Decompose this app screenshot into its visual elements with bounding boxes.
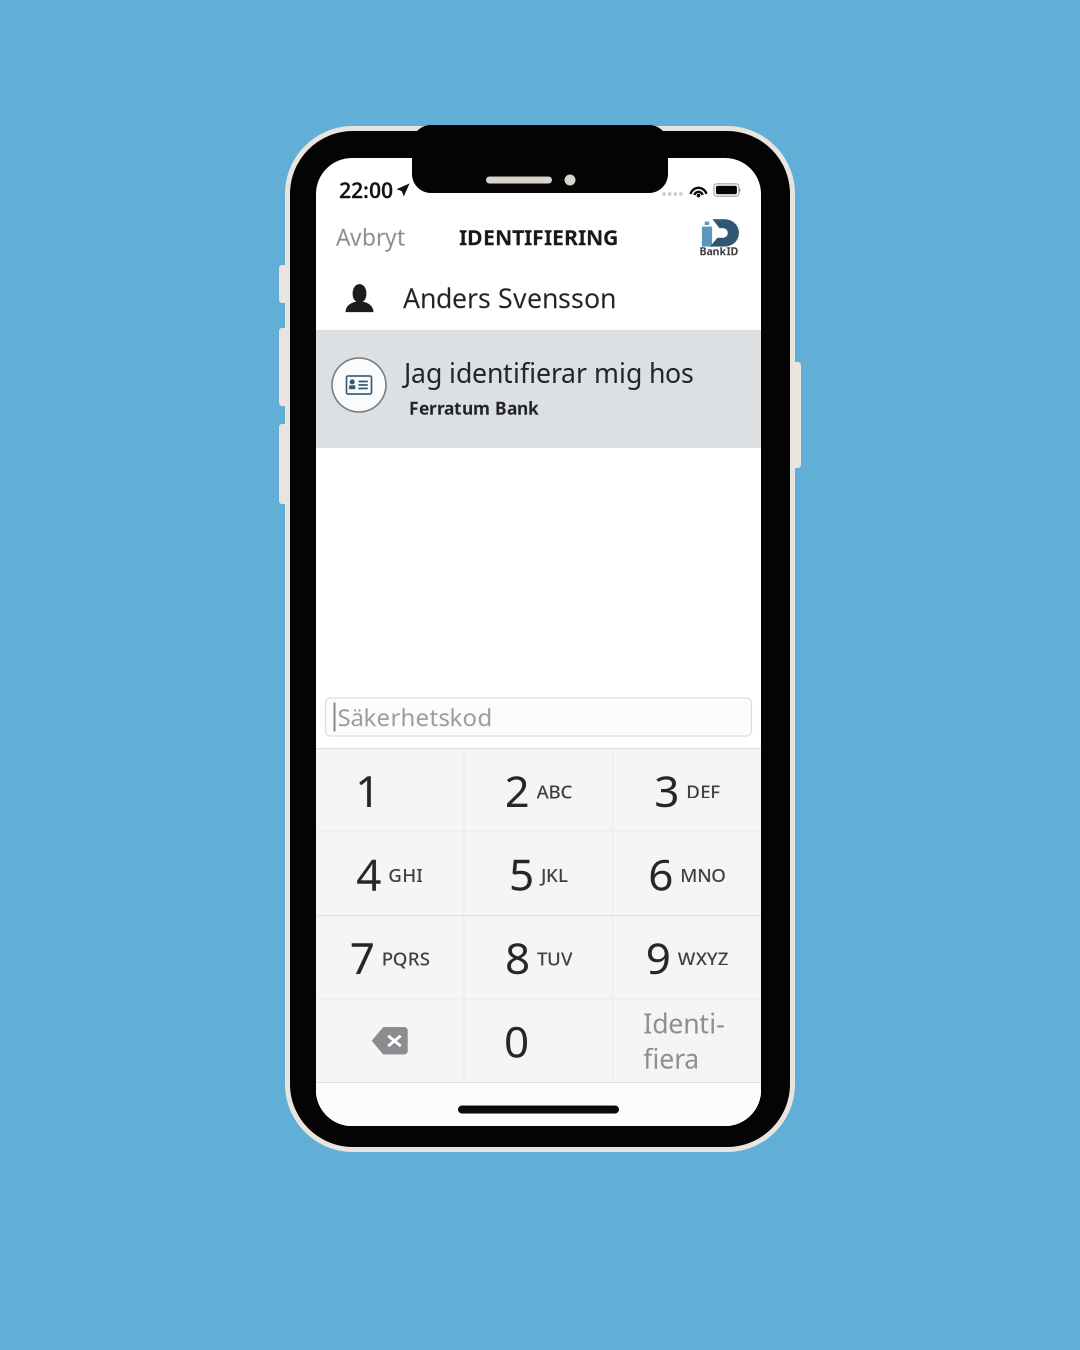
button[interactable]: 8 — [465, 916, 612, 998]
button[interactable]: Identi- fiera — [613, 999, 761, 1082]
staticText: Ferratum Bank — [409, 396, 539, 419]
staticText: WXYZ — [678, 946, 729, 971]
staticText: 2 — [504, 761, 529, 819]
staticText: TUV — [537, 946, 572, 971]
staticText: MNO — [680, 862, 726, 887]
button[interactable]: 3 — [613, 749, 761, 831]
staticText: 9 — [646, 928, 671, 986]
staticText: Anders Svensson — [403, 280, 616, 316]
button[interactable]: 7 — [316, 916, 464, 998]
staticText: 22:00 — [339, 176, 393, 204]
staticText: Jag identifierar mig hos — [404, 355, 694, 390]
staticText: DEF — [686, 779, 720, 804]
button[interactable]: 2 — [465, 749, 612, 831]
button[interactable]: 1 — [316, 749, 464, 831]
staticText: Identi- fiera — [643, 1005, 725, 1076]
staticText: Säkerhetskod — [337, 701, 492, 733]
button[interactable]: Radera — [316, 999, 464, 1082]
staticText: IDENTIFIERING — [459, 223, 618, 251]
staticText: JKL — [541, 862, 568, 887]
staticText: 0 — [504, 1011, 529, 1070]
button[interactable]: Avbryt — [316, 208, 432, 266]
staticText: 6 — [648, 844, 673, 903]
button[interactable]: 4 — [316, 832, 464, 915]
staticText: PQRS — [382, 946, 430, 971]
staticText: 3 — [654, 761, 679, 819]
staticText: BankID — [699, 244, 738, 258]
staticText: GHI — [388, 862, 423, 887]
staticText: 4 — [356, 844, 381, 903]
staticText: ABC — [536, 779, 572, 804]
staticText: 1 — [355, 761, 380, 819]
staticText: 5 — [509, 844, 534, 903]
button[interactable]: 0 — [465, 999, 612, 1082]
button[interactable]: 9 — [613, 916, 761, 998]
button[interactable]: 6 — [613, 832, 761, 915]
staticText: 7 — [350, 928, 375, 986]
button[interactable]: 5 — [465, 832, 612, 915]
staticText: Avbryt — [336, 222, 405, 252]
staticText: 8 — [505, 928, 530, 986]
button[interactable]: BankID — [681, 208, 761, 266]
